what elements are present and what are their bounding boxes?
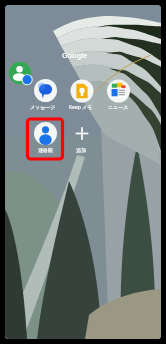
staticText: 追加: [76, 147, 86, 153]
staticText: Google: [62, 50, 88, 60]
staticText: Keep メモ: [69, 104, 93, 111]
staticText: 連絡帳: [38, 147, 53, 153]
staticText: メッセージ: [30, 104, 56, 110]
staticText: ニュース: [108, 104, 129, 110]
